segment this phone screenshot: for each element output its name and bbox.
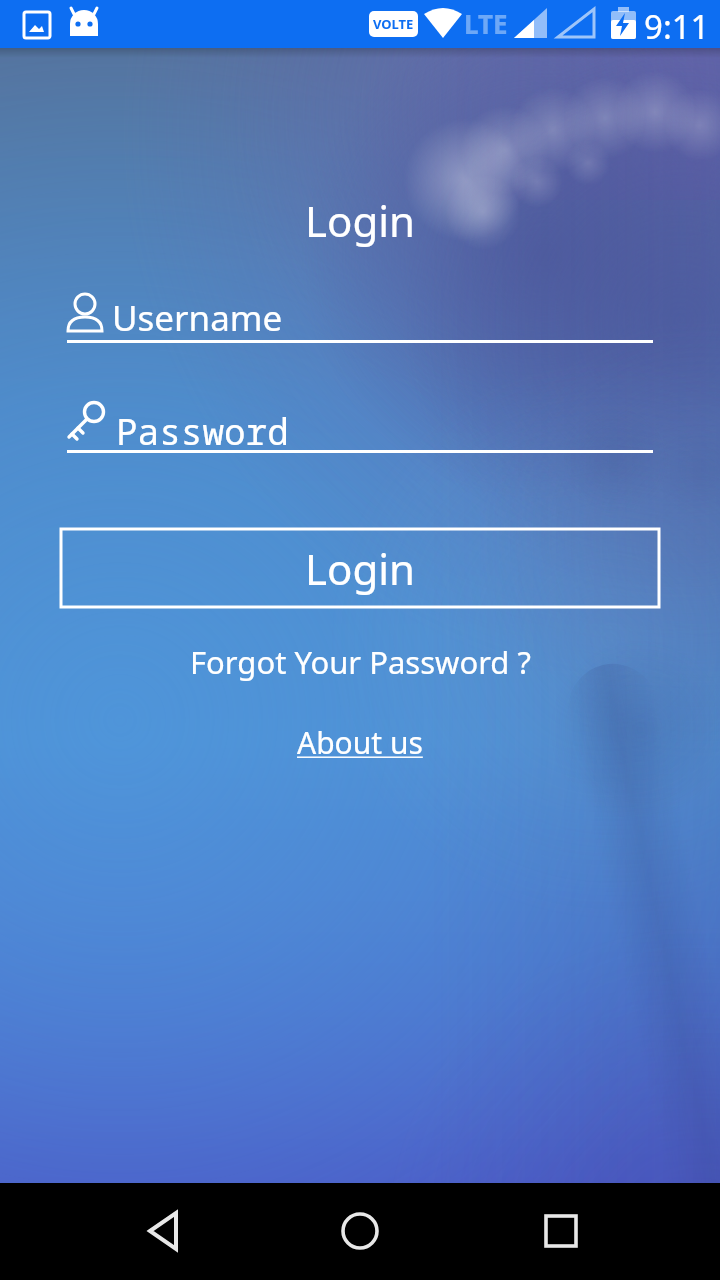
staticText: LTE bbox=[464, 6, 508, 41]
button[interactable] bbox=[0, 1183, 240, 1280]
staticText: Password bbox=[116, 407, 289, 456]
button[interactable]: Forgot Your Password ? bbox=[190, 641, 531, 683]
button[interactable] bbox=[480, 1183, 720, 1280]
button[interactable]: About us bbox=[297, 722, 423, 763]
button[interactable]: Password bbox=[60, 395, 660, 457]
button[interactable]: Username bbox=[60, 285, 660, 347]
staticText: 9:11 bbox=[644, 4, 710, 49]
staticText: Login bbox=[0, 192, 720, 249]
staticText: VOLTE bbox=[373, 15, 414, 33]
staticText: Username bbox=[112, 294, 283, 342]
button[interactable]: Login bbox=[61, 529, 659, 607]
button[interactable] bbox=[240, 1183, 480, 1280]
staticText: Login bbox=[305, 540, 416, 597]
